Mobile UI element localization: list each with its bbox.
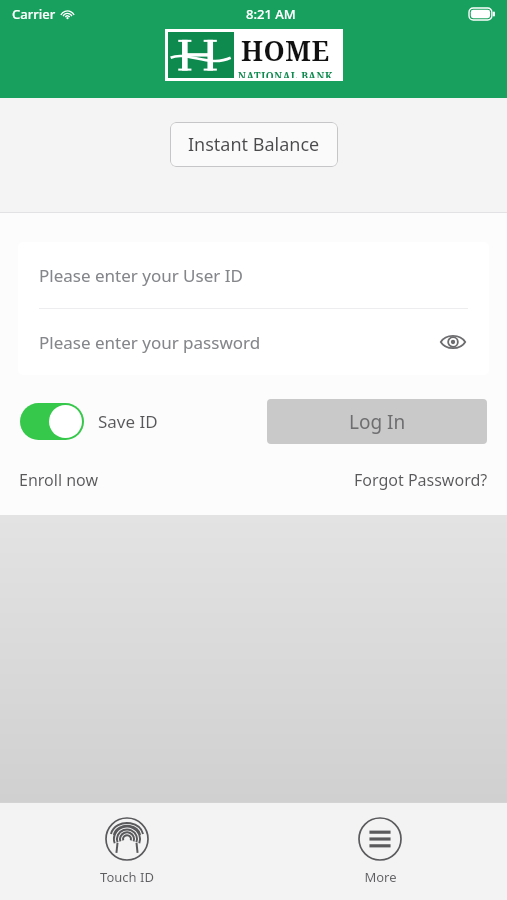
staticText: Save ID xyxy=(98,410,158,433)
button[interactable]: Show password xyxy=(438,327,468,357)
staticText: NATIONAL BANK xyxy=(238,69,333,78)
button[interactable]: More xyxy=(340,803,420,894)
button[interactable]: Enroll now xyxy=(19,469,98,491)
staticText: HOME xyxy=(241,32,330,69)
staticText: 8:21 AM xyxy=(246,5,296,23)
button[interactable]: Touch ID xyxy=(82,803,172,894)
staticText: Carrier xyxy=(12,5,56,23)
staticText: More xyxy=(364,868,397,886)
staticText: Please enter your password xyxy=(39,331,261,354)
button[interactable]: Log In xyxy=(267,399,487,444)
staticText: Enroll now xyxy=(19,469,98,491)
staticText: Touch ID xyxy=(100,868,154,886)
button[interactable]: Please enter your password xyxy=(18,309,489,375)
button[interactable]: Forgot Password? xyxy=(354,469,488,491)
button[interactable]: Please enter your User ID xyxy=(18,242,489,308)
staticText: Instant Balance xyxy=(188,132,320,157)
staticText: Forgot Password? xyxy=(354,469,488,491)
button[interactable]: Instant Balance xyxy=(170,122,338,167)
button[interactable]: Save ID toggle xyxy=(20,403,158,440)
staticText: Log In xyxy=(349,409,406,435)
staticText: Please enter your User ID xyxy=(39,264,243,287)
